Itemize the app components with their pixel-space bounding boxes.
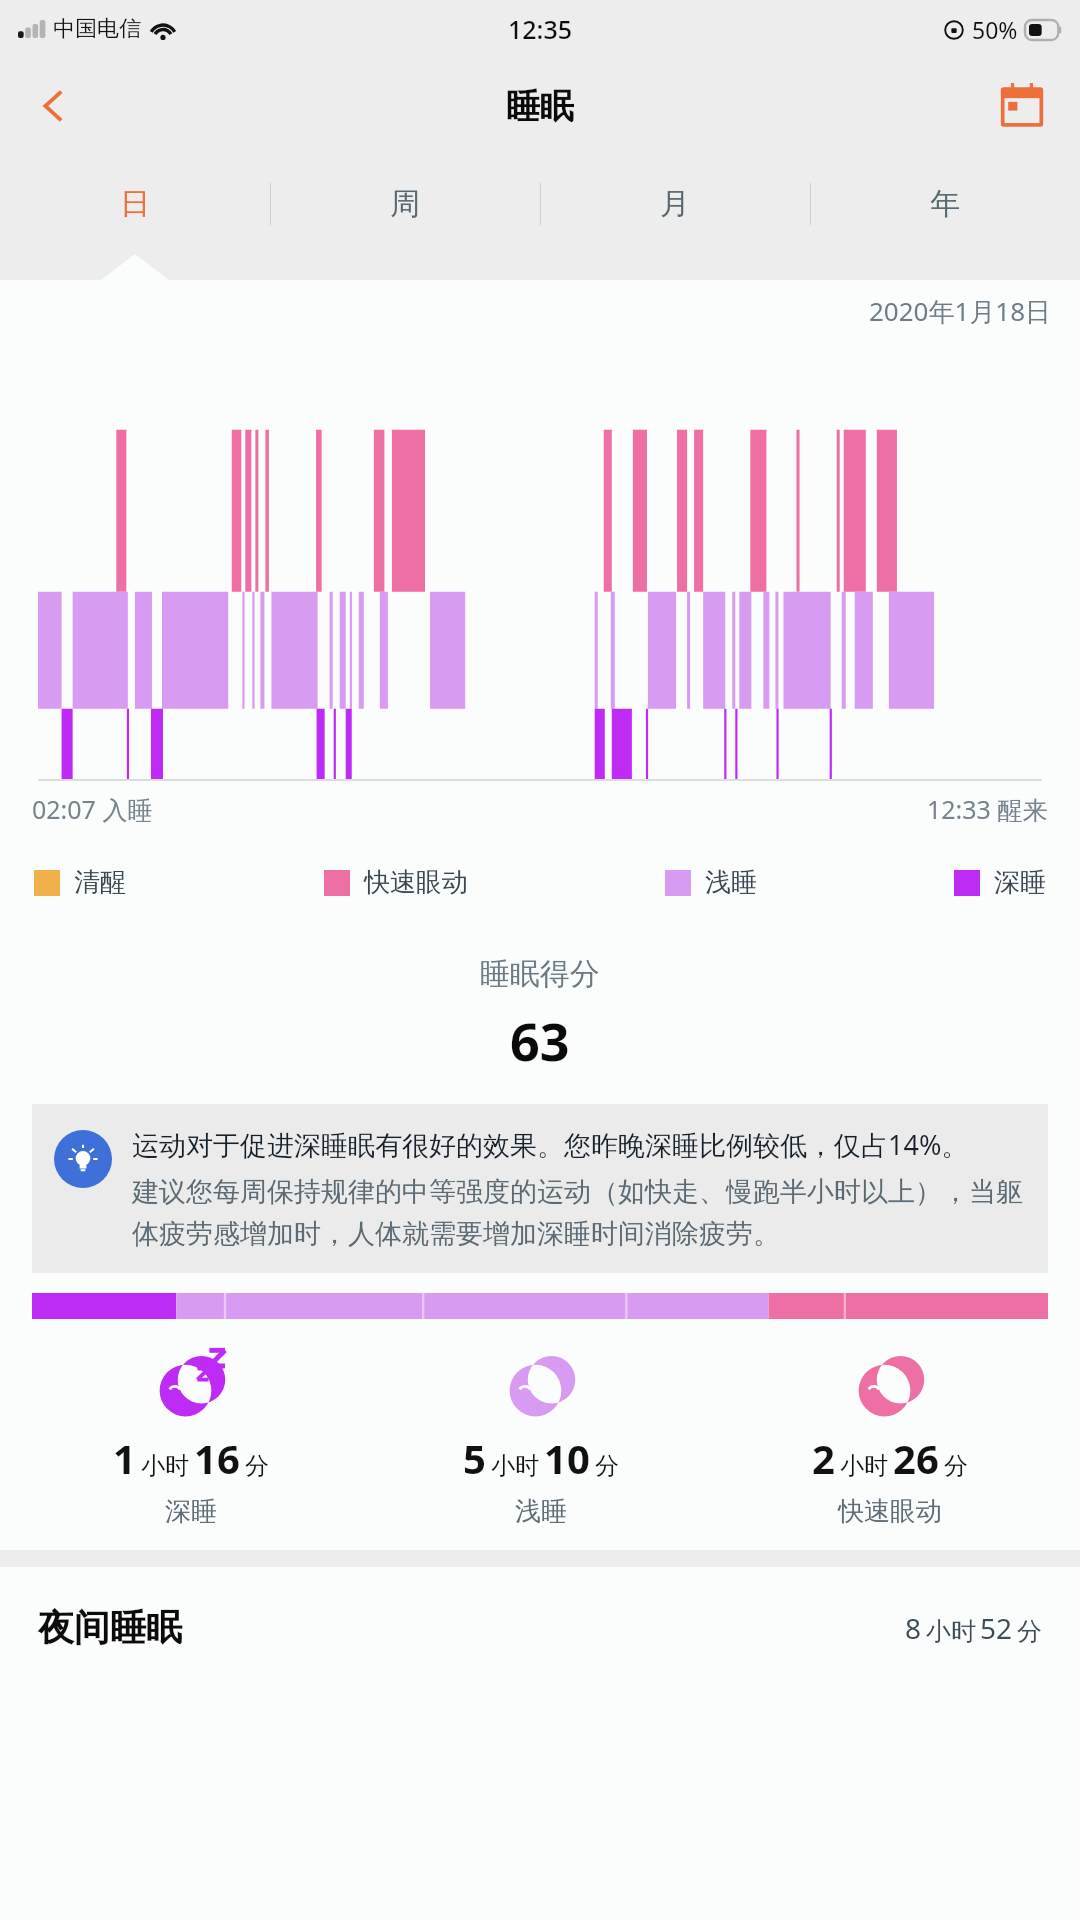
button[interactable]: 月 <box>540 154 810 254</box>
staticText: 小时 <box>840 1451 888 1481</box>
staticText: 小时 <box>491 1451 539 1481</box>
staticText: 小时 <box>141 1451 189 1481</box>
button[interactable]: 1 <box>16 1345 366 1528</box>
staticText: 12:33 醒来 <box>927 792 1048 826</box>
staticText: 浅睡 <box>515 1495 567 1528</box>
button[interactable]: 2 <box>715 1345 1064 1528</box>
button[interactable]: 运动对于促进深睡眠有很好的效果。您昨晚深睡比例较低，仅占14%。 <box>32 1104 1048 1273</box>
staticText: 分 <box>595 1451 619 1481</box>
staticText: 63 <box>510 1005 570 1076</box>
staticText: 分 <box>245 1451 269 1481</box>
staticText: 年 <box>930 185 960 223</box>
button[interactable]: 周 <box>270 154 540 254</box>
staticText: 中国电信 <box>53 15 141 43</box>
staticText: 小时 <box>926 1616 976 1647</box>
button[interactable]: 日 <box>0 154 270 254</box>
staticText: 5 <box>463 1431 486 1485</box>
button[interactable]: Back <box>18 70 90 142</box>
button[interactable]: Calendar <box>986 70 1058 142</box>
staticText: 12:35 <box>508 12 573 46</box>
staticText: 日 <box>120 185 150 223</box>
staticText: 分 <box>1017 1616 1042 1647</box>
staticText: 深睡 <box>165 1495 217 1528</box>
staticText: 深睡 <box>994 866 1046 899</box>
staticText: 50% <box>972 14 1018 45</box>
button[interactable]: 5 <box>366 1345 715 1528</box>
staticText: 睡眠得分 <box>480 955 600 993</box>
staticText: 2020年1月18日 <box>869 293 1052 329</box>
staticText: 16 <box>194 1431 240 1485</box>
staticText: 10 <box>544 1431 590 1485</box>
button[interactable]: 夜间睡眠 <box>0 1605 1080 1650</box>
button[interactable]: 年 <box>810 154 1080 254</box>
staticText: 运动对于促进深睡眠有很好的效果。您昨晚深睡比例较低，仅占14%。 <box>132 1126 969 1163</box>
staticText: 月 <box>660 185 690 223</box>
staticText: 夜间睡眠 <box>38 1605 182 1650</box>
staticText: 2 <box>812 1431 835 1485</box>
staticText: 02:07 入睡 <box>32 792 153 826</box>
staticText: 睡眠 <box>506 85 574 128</box>
staticText: 52 <box>980 1609 1013 1647</box>
staticText: 快速眼动 <box>364 866 468 899</box>
staticText: 快速眼动 <box>838 1495 942 1528</box>
staticText: 周 <box>390 185 420 223</box>
staticText: 浅睡 <box>705 866 757 899</box>
staticText: 8 <box>905 1609 922 1647</box>
staticText: 1 <box>113 1431 136 1485</box>
staticText: 26 <box>893 1431 939 1485</box>
staticText: 清醒 <box>74 866 126 899</box>
staticText: 建议您每周保持规律的中等强度的运动（如快走、慢跑半小时以上），当躯体疲劳感增加时… <box>132 1175 1024 1251</box>
staticText: 分 <box>944 1451 968 1481</box>
